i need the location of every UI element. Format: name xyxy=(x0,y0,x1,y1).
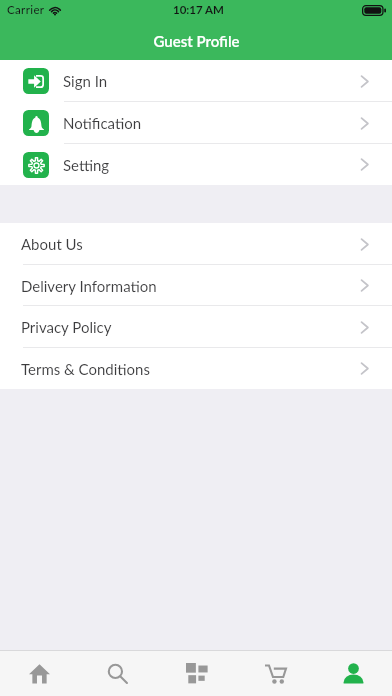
button[interactable]: Privacy Policy xyxy=(0,306,392,348)
button[interactable]: Notification xyxy=(0,102,392,144)
button[interactable]: About Us xyxy=(0,223,392,265)
button[interactable]: Sign In xyxy=(0,60,392,102)
staticText: Privacy Policy xyxy=(21,318,112,336)
button[interactable]: Delivery Information xyxy=(0,265,392,306)
button[interactable]: Search xyxy=(78,651,156,696)
button[interactable]: Categories xyxy=(157,651,235,696)
button[interactable]: Cart xyxy=(235,651,313,696)
staticText: Notification xyxy=(63,114,142,132)
staticText: Delivery Information xyxy=(21,277,157,295)
button[interactable]: Profile xyxy=(314,651,392,696)
staticText: Sign In xyxy=(63,72,108,90)
staticText: Terms & Conditions xyxy=(21,360,150,378)
button[interactable]: Setting xyxy=(0,144,392,185)
staticText: Setting xyxy=(63,156,110,174)
button[interactable]: Home xyxy=(0,651,78,696)
staticText: 10:17 AM xyxy=(173,3,224,17)
staticText: Guest Profile xyxy=(153,32,240,50)
button[interactable]: Terms & Conditions xyxy=(0,348,392,389)
staticText: Carrier xyxy=(7,3,45,17)
staticText: About Us xyxy=(21,235,83,253)
